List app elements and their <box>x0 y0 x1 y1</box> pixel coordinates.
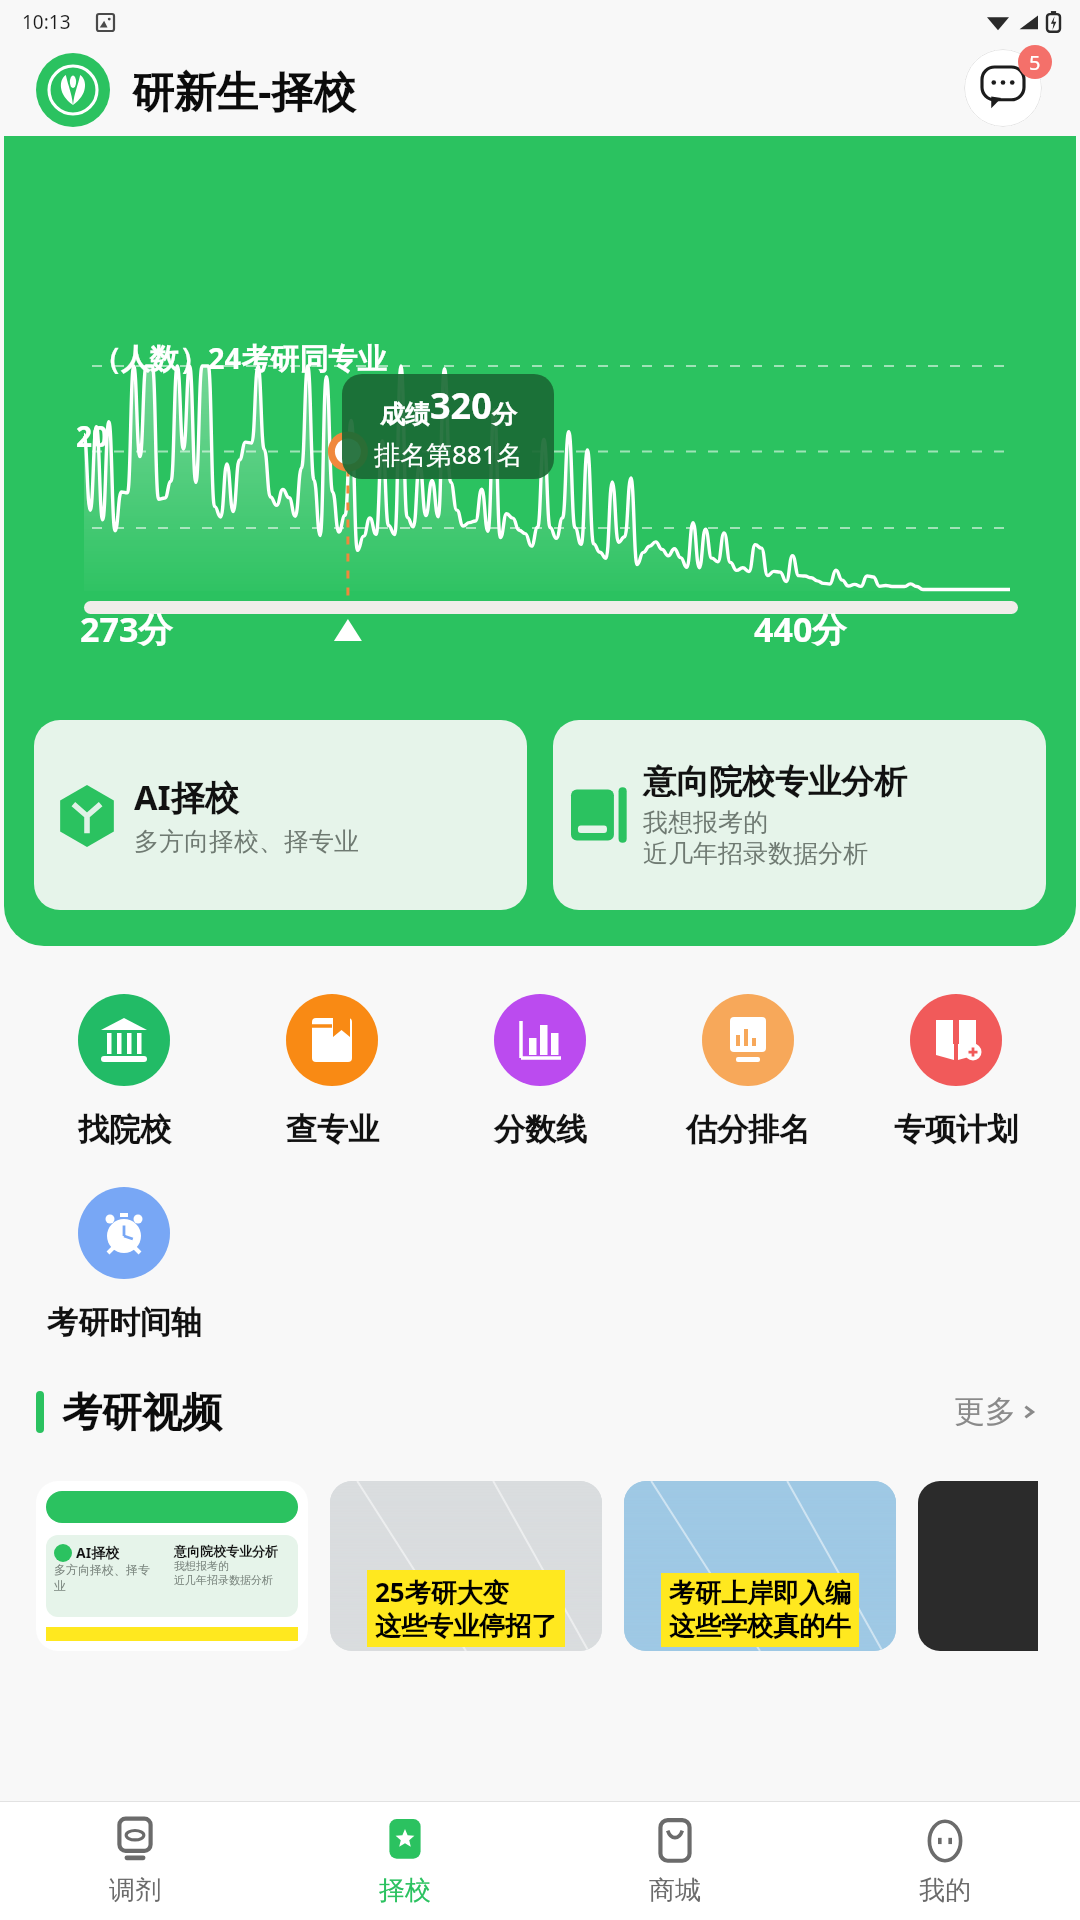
staticText: 这些专业停招了 <box>375 1610 557 1643</box>
button[interactable]: 查专业 <box>228 990 436 1153</box>
staticText: 440分 <box>754 606 847 652</box>
staticText: 我想报考的 <box>174 1559 229 1573</box>
button[interactable]: 找院校 <box>20 990 228 1153</box>
button[interactable]: AI择校 <box>36 1481 308 1651</box>
staticText: 调剂 <box>109 1874 161 1907</box>
button[interactable]: 择校 <box>270 1802 540 1920</box>
button[interactable]: 考研上岸即入编 <box>624 1481 896 1651</box>
staticText: 273分 <box>80 606 173 652</box>
staticText: 分数线 <box>494 1110 587 1149</box>
staticText: 意向院校专业分析 <box>174 1543 278 1559</box>
staticText: 5 <box>1029 49 1041 76</box>
staticText: 更多 <box>954 1392 1016 1431</box>
button[interactable]: 考研时间轴 <box>20 1183 228 1346</box>
staticText: 这些学校真的牛 <box>669 1610 851 1643</box>
staticText: 意向院校专业分析 <box>643 761 907 803</box>
staticText: 研新生-择校 <box>132 62 356 119</box>
staticText: 25考研大变 <box>375 1574 509 1610</box>
button[interactable]: 25考研大变 <box>330 1481 602 1651</box>
staticText: 我的 <box>919 1874 971 1907</box>
button[interactable]: 商城 <box>540 1802 810 1920</box>
button[interactable]: Messages <box>964 49 1042 127</box>
staticText: 20 <box>76 417 109 455</box>
button[interactable]: 专项计划 <box>852 990 1060 1153</box>
staticText: （人数）24考研同专业 <box>92 338 387 378</box>
button[interactable]: AI择校 <box>34 720 527 910</box>
staticText: 我想报考的 <box>643 807 768 838</box>
staticText: 多方向择校、择专业 <box>134 826 359 857</box>
staticText: 320 <box>430 381 492 430</box>
button[interactable]: 分数线 <box>436 990 644 1153</box>
staticText: 找院校 <box>78 1110 171 1149</box>
staticText: 多方向择校、择专业 <box>54 1562 158 1594</box>
staticText: 查专业 <box>286 1110 379 1149</box>
staticText: 专项计划 <box>894 1110 1018 1149</box>
button[interactable]: 调剂 <box>0 1802 270 1920</box>
staticText: 择校 <box>379 1874 431 1907</box>
staticText: 考研时间轴 <box>47 1303 202 1342</box>
button[interactable] <box>918 1481 1038 1651</box>
staticText: 分 <box>492 399 517 430</box>
staticText: AI择校 <box>134 774 239 820</box>
button[interactable]: 意向院校专业分析 <box>553 720 1046 910</box>
staticText: 估分排名 <box>686 1110 810 1149</box>
staticText: 近几年招录数据分析 <box>643 838 868 869</box>
staticText: 考研视频 <box>62 1387 222 1437</box>
button[interactable]: 估分排名 <box>644 990 852 1153</box>
staticText: AI择校 <box>76 1543 120 1562</box>
staticText: 近几年招录数据分析 <box>174 1573 273 1587</box>
staticText: 排名第881名 <box>374 436 523 472</box>
staticText: 考研上岸即入编 <box>669 1577 851 1610</box>
staticText: 商城 <box>649 1874 701 1907</box>
staticText: 成绩 <box>380 399 430 430</box>
button[interactable]: 我的 <box>810 1802 1080 1920</box>
staticText: 10:13 <box>22 9 71 35</box>
button[interactable]: 更多 <box>948 1386 1044 1437</box>
